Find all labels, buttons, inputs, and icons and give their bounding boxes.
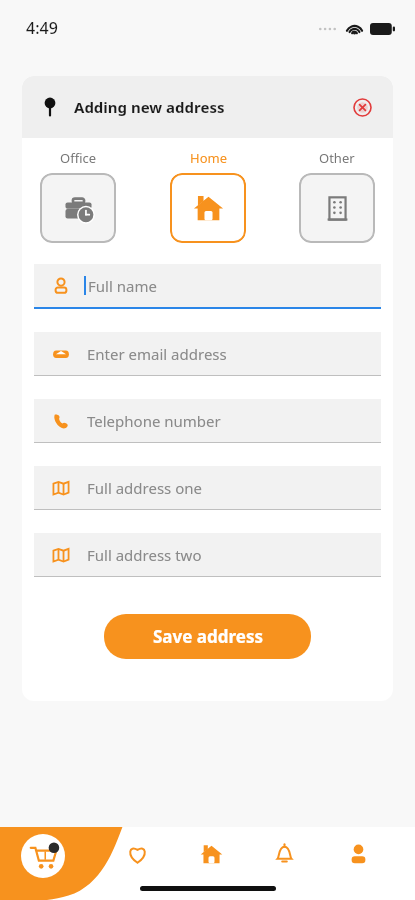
- button[interactable]: Profile: [335, 831, 381, 877]
- button[interactable]: Home: [188, 831, 234, 877]
- staticText: Home: [190, 149, 227, 167]
- button[interactable]: Other: [299, 173, 375, 243]
- staticText: Adding new address: [74, 97, 225, 117]
- button[interactable]: Close: [349, 94, 375, 120]
- button[interactable]: Cart: [21, 834, 65, 878]
- button[interactable]: Save address: [104, 614, 311, 659]
- staticText: Telephone number: [87, 411, 221, 431]
- staticText: Office: [60, 149, 97, 167]
- staticText: Full address two: [87, 545, 202, 565]
- staticText: 4:49: [26, 17, 58, 39]
- button[interactable]: Home: [170, 173, 246, 243]
- staticText: Full name: [88, 276, 157, 296]
- button[interactable]: Favourites: [114, 831, 160, 877]
- button[interactable]: Full address two: [34, 533, 381, 577]
- staticText: Full address one: [87, 478, 202, 498]
- staticText: Other: [319, 149, 355, 167]
- staticText: Enter email address: [87, 344, 227, 364]
- button[interactable]: Full address one: [34, 466, 381, 510]
- staticText: Save address: [153, 625, 263, 648]
- button[interactable]: Telephone number: [34, 399, 381, 443]
- button[interactable]: Full name: [34, 264, 381, 309]
- button[interactable]: Notifications: [261, 831, 307, 877]
- button[interactable]: Office: [40, 173, 116, 243]
- button[interactable]: Enter email address: [34, 332, 381, 376]
